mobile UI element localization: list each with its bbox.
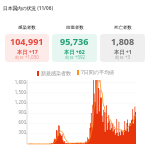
staticText: 7日間の平均値 xyxy=(81,69,114,76)
staticText: 前日 +592 xyxy=(65,54,85,60)
staticText: 1,500 xyxy=(14,89,26,95)
staticText: 104,991 xyxy=(10,35,44,47)
button[interactable]: 95,736 xyxy=(52,34,97,62)
staticText: 感染者数 xyxy=(18,25,36,31)
staticText: 前日 +1,050 xyxy=(15,54,39,60)
staticText: 本日 +1 xyxy=(114,48,132,55)
staticText: 1,808 xyxy=(111,35,135,47)
staticText: 本日 +17 xyxy=(17,48,38,55)
staticText: 日本国内の状況 (11/06) xyxy=(3,5,53,11)
staticText: 600 xyxy=(18,119,26,125)
staticText: 1,800 xyxy=(14,80,26,85)
staticText: 900 xyxy=(18,109,26,115)
staticText: 死亡者数 xyxy=(114,25,132,31)
staticText: 回復者数 xyxy=(66,25,84,31)
staticText: 1,200 xyxy=(14,99,26,105)
button[interactable]: 7日間の平均値 xyxy=(77,69,114,76)
staticText: 新規感染者数 xyxy=(41,70,71,76)
staticText: 300 xyxy=(18,129,26,135)
staticText: 前日 +3 xyxy=(115,54,130,60)
button[interactable]: 1,808 xyxy=(100,34,145,62)
button[interactable]: 104,991 xyxy=(5,34,49,62)
button[interactable]: 新規感染者数 xyxy=(37,70,71,76)
staticText: 95,736 xyxy=(60,35,89,47)
staticText: 本日 +62 xyxy=(64,48,85,55)
